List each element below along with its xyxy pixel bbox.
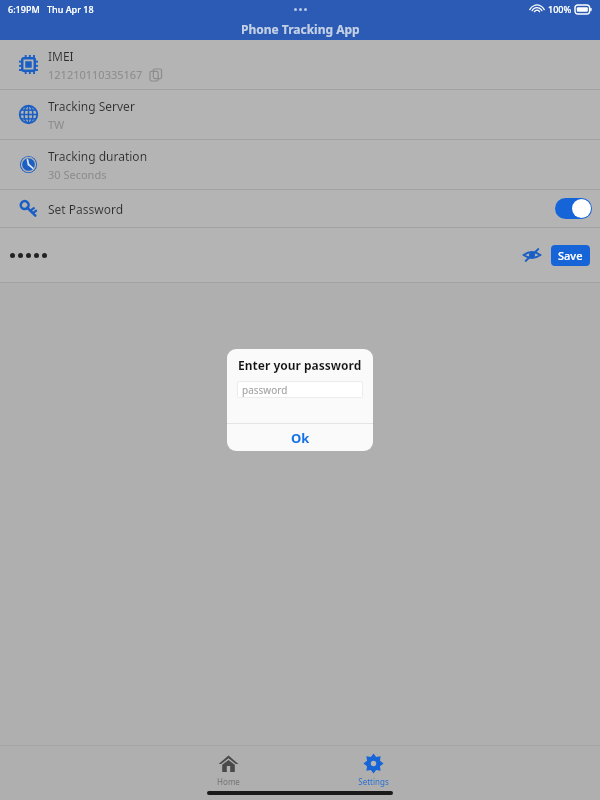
staticText: 30 Seconds	[48, 167, 107, 182]
staticText: 6:19PM	[8, 3, 40, 15]
staticText: Phone Tracking App	[241, 21, 360, 37]
staticText: IMEI	[48, 48, 74, 64]
button[interactable]: password	[237, 381, 363, 398]
button[interactable]: Set password toggle	[555, 198, 592, 219]
button[interactable]: Copy IMEI	[150, 69, 162, 81]
button[interactable]: Set Password	[0, 190, 600, 227]
staticText: Settings	[358, 776, 389, 787]
staticText: password	[242, 383, 288, 397]
button[interactable]: IMEI	[0, 40, 600, 89]
staticText: Tracking duration	[48, 148, 148, 164]
staticText: Thu Apr 18	[47, 3, 94, 15]
staticText: Home	[217, 776, 240, 787]
staticText: Tracking Server	[48, 98, 135, 114]
button[interactable]: Tracking duration	[0, 140, 600, 189]
staticText: Set Password	[48, 201, 124, 217]
staticText: Ok	[291, 429, 310, 447]
staticText: TW	[48, 117, 65, 132]
button[interactable]: Show password	[517, 240, 547, 270]
button[interactable]: Ok	[227, 424, 373, 451]
button[interactable]: Home	[198, 751, 258, 789]
staticText: Enter your password	[238, 357, 362, 373]
button[interactable]: Save	[551, 245, 590, 266]
button[interactable]: Tracking Server	[0, 90, 600, 139]
button[interactable]: Settings	[343, 751, 403, 789]
staticText: 121210110335167	[48, 67, 143, 82]
staticText: Save	[558, 248, 583, 263]
staticText: 100%	[548, 3, 572, 15]
